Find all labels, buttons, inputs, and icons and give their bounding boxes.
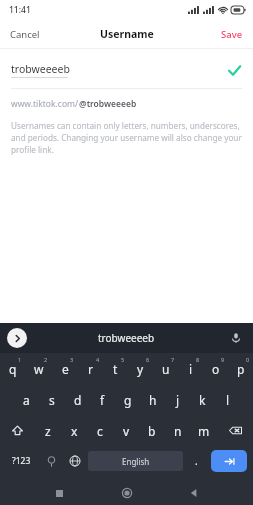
button[interactable]: t [103, 353, 128, 384]
staticText: 6 [146, 356, 150, 363]
button[interactable]: trobweeeeb [0, 62, 253, 78]
staticText: x [71, 423, 78, 439]
staticText: www.tiktok.com/ [11, 98, 79, 110]
staticText: n [174, 423, 182, 439]
staticText: 3 [70, 356, 74, 363]
staticText: 8 [196, 356, 200, 363]
staticText: . [195, 454, 198, 468]
button[interactable]: v [113, 415, 139, 446]
staticText: Username [100, 27, 154, 41]
button[interactable]: a [13, 384, 39, 415]
staticText: English [122, 456, 150, 467]
staticText: w [34, 361, 44, 377]
button[interactable]: x [61, 415, 87, 446]
staticText: y [137, 361, 144, 377]
button[interactable]: Voice input [227, 329, 245, 347]
staticText: 2 [44, 356, 48, 363]
button[interactable]: ?123 [3, 446, 40, 476]
button[interactable]: u [153, 353, 178, 384]
staticText: 4 [96, 356, 100, 363]
button[interactable]: Backspace [217, 415, 253, 446]
staticText: 1 [18, 356, 22, 363]
staticText: b [148, 423, 156, 439]
staticText: p [237, 361, 245, 377]
button[interactable]: . [185, 446, 208, 476]
staticText: t [113, 361, 118, 377]
staticText: q [9, 361, 17, 377]
button[interactable]: f [90, 384, 115, 415]
button[interactable]: Emoji [40, 446, 63, 476]
button[interactable]: Enter [211, 450, 247, 472]
staticText: 0 [246, 356, 250, 363]
staticText: h [149, 392, 157, 408]
staticText: u [162, 361, 170, 377]
button[interactable]: trobweeeeb [94, 327, 159, 349]
staticText: i [189, 361, 193, 377]
staticText: d [74, 392, 82, 408]
button[interactable]: k [190, 384, 215, 415]
staticText: m [198, 423, 210, 439]
button[interactable]: e [52, 353, 78, 384]
button[interactable]: w [26, 353, 52, 384]
button[interactable]: b [139, 415, 165, 446]
button[interactable]: Cancel [0, 22, 50, 47]
button[interactable]: English [88, 451, 183, 471]
button[interactable]: o [203, 353, 228, 384]
button[interactable]: Home [116, 482, 138, 504]
button[interactable]: y [128, 353, 153, 384]
button[interactable]: Shift [0, 415, 35, 446]
staticText: Usernames can contain only letters, numb… [11, 120, 242, 155]
staticText: o [212, 361, 220, 377]
staticText: ?123 [12, 455, 31, 467]
staticText: f [100, 392, 105, 408]
staticText: g [124, 392, 132, 408]
button[interactable]: r [78, 353, 103, 384]
staticText: r [88, 361, 93, 377]
button[interactable]: z [35, 415, 61, 446]
staticText: 11:41 [9, 4, 31, 16]
staticText: Save [221, 28, 243, 41]
button[interactable]: Save [211, 22, 253, 47]
button[interactable]: g [115, 384, 140, 415]
staticText: e [62, 361, 69, 377]
button[interactable]: n [165, 415, 191, 446]
button[interactable]: Back [183, 482, 205, 504]
staticText: 9 [221, 356, 225, 363]
staticText: v [123, 423, 130, 439]
staticText: a [23, 392, 30, 408]
button[interactable]: h [140, 384, 165, 415]
staticText: k [199, 392, 206, 408]
staticText: @trobweeeeb [79, 98, 137, 110]
button[interactable]: p [228, 353, 253, 384]
staticText: l [226, 392, 230, 408]
staticText: c [97, 423, 103, 439]
button[interactable]: m [191, 415, 217, 446]
button[interactable]: c [87, 415, 113, 446]
button[interactable]: q [0, 353, 26, 384]
staticText: 5 [121, 356, 125, 363]
button[interactable]: Change language [63, 446, 86, 476]
button[interactable]: s [39, 384, 65, 415]
button[interactable]: d [65, 384, 90, 415]
staticText: 7 [171, 356, 175, 363]
button[interactable]: Recent apps [48, 482, 70, 504]
staticText: trobweeeeb [98, 331, 155, 345]
button[interactable]: i [178, 353, 203, 384]
button[interactable]: l [215, 384, 240, 415]
staticText: s [49, 392, 55, 408]
button[interactable]: j [165, 384, 190, 415]
button[interactable]: More suggestions [7, 328, 27, 348]
staticText: Cancel [10, 28, 40, 41]
staticText: z [45, 423, 51, 439]
staticText: j [176, 392, 180, 408]
staticText: trobweeeeb [11, 62, 70, 76]
